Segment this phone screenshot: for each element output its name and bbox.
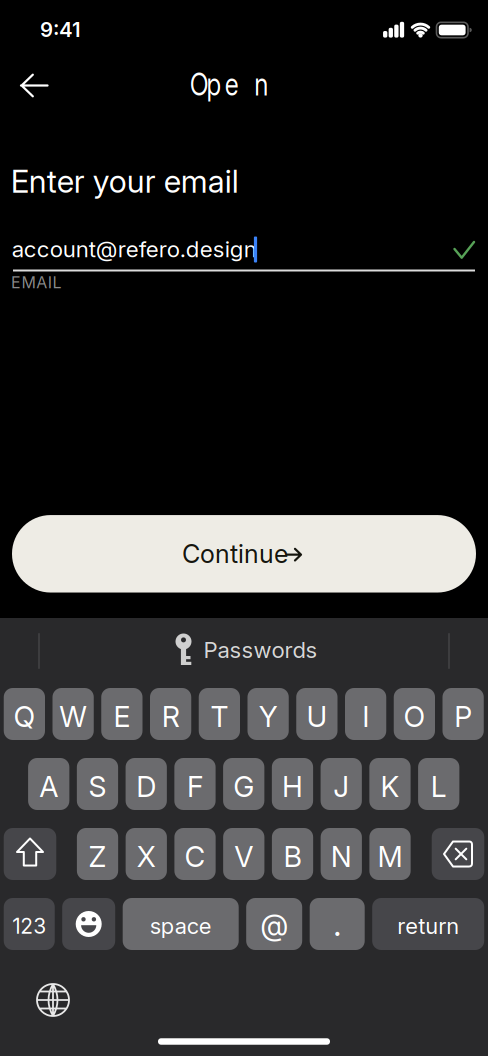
button[interactable]: J xyxy=(321,758,362,810)
button[interactable]: D xyxy=(126,758,167,810)
button[interactable]: S xyxy=(77,758,118,810)
button[interactable]: 123 xyxy=(4,898,55,950)
staticText: F xyxy=(187,770,203,803)
button[interactable]: V xyxy=(223,828,264,880)
button[interactable]: N xyxy=(321,828,362,880)
staticText: I xyxy=(362,700,369,733)
staticText: R xyxy=(162,700,180,733)
button[interactable]: I xyxy=(345,688,386,740)
staticText: V xyxy=(234,840,253,873)
staticText: E xyxy=(113,700,130,733)
button[interactable]: O xyxy=(394,688,435,740)
button[interactable]: M xyxy=(369,828,411,880)
staticText: M xyxy=(377,840,402,873)
staticText: J xyxy=(333,770,349,803)
staticText: Enter your email xyxy=(11,163,239,200)
staticText: L xyxy=(431,770,447,803)
button[interactable]: X xyxy=(126,828,167,880)
button[interactable]: Passwords xyxy=(173,628,317,672)
staticText: @ xyxy=(260,908,288,942)
button[interactable]: A xyxy=(28,758,69,810)
staticText: return xyxy=(397,913,459,939)
button[interactable]: Emoji xyxy=(62,898,115,950)
staticText: 123 xyxy=(12,914,46,938)
staticText: Passwords xyxy=(203,637,317,663)
button[interactable]: Continue xyxy=(12,515,476,592)
staticText: Y xyxy=(259,700,278,733)
button[interactable]: U xyxy=(296,688,337,740)
button[interactable]: return xyxy=(372,898,484,950)
staticText: O xyxy=(187,65,211,103)
staticText: account@refero.design xyxy=(12,236,257,262)
staticText: N xyxy=(331,840,352,873)
button[interactable]: Delete xyxy=(432,828,484,880)
staticText: n xyxy=(252,65,270,103)
button[interactable]: space xyxy=(123,898,239,950)
button[interactable]: K xyxy=(369,758,411,810)
staticText: Q xyxy=(13,700,35,733)
staticText: A xyxy=(39,770,58,803)
staticText: e xyxy=(223,65,241,103)
button[interactable]: Next keyboard xyxy=(35,982,71,1018)
staticText: space xyxy=(150,913,212,939)
button[interactable]: C xyxy=(174,828,216,880)
button[interactable]: W xyxy=(52,688,94,740)
button[interactable]: T xyxy=(199,688,240,740)
button[interactable]: F xyxy=(174,758,215,810)
staticText: K xyxy=(380,770,399,803)
button[interactable]: G xyxy=(223,758,264,810)
button[interactable]: B xyxy=(272,828,313,880)
staticText: W xyxy=(59,700,87,733)
staticText: p xyxy=(204,65,223,103)
staticText: G xyxy=(233,770,254,803)
button[interactable]: . xyxy=(310,898,365,950)
staticText: B xyxy=(283,840,301,873)
staticText: Continue xyxy=(182,539,288,569)
button[interactable]: H xyxy=(272,758,313,810)
staticText: H xyxy=(282,770,303,803)
button[interactable]: Shift xyxy=(4,828,56,880)
button[interactable]: @ xyxy=(246,898,302,950)
staticText: EMAIL xyxy=(11,273,61,292)
button[interactable]: L xyxy=(418,758,459,810)
button[interactable]: P xyxy=(442,688,484,740)
staticText: Z xyxy=(88,840,106,873)
staticText: D xyxy=(136,770,156,803)
staticText: O xyxy=(403,700,425,733)
staticText: U xyxy=(306,700,327,733)
button[interactable]: E xyxy=(101,688,142,740)
staticText: C xyxy=(184,840,205,873)
button[interactable]: Back xyxy=(13,70,57,101)
staticText: 9:41 xyxy=(40,17,81,42)
staticText: . xyxy=(333,904,341,943)
staticText: T xyxy=(210,700,228,733)
staticText: P xyxy=(454,700,472,733)
staticText: S xyxy=(88,770,106,803)
staticText: X xyxy=(137,840,156,873)
button[interactable]: Q xyxy=(4,688,45,740)
button[interactable]: Z xyxy=(77,828,118,880)
button[interactable]: R xyxy=(150,688,191,740)
button[interactable]: Y xyxy=(247,688,289,740)
